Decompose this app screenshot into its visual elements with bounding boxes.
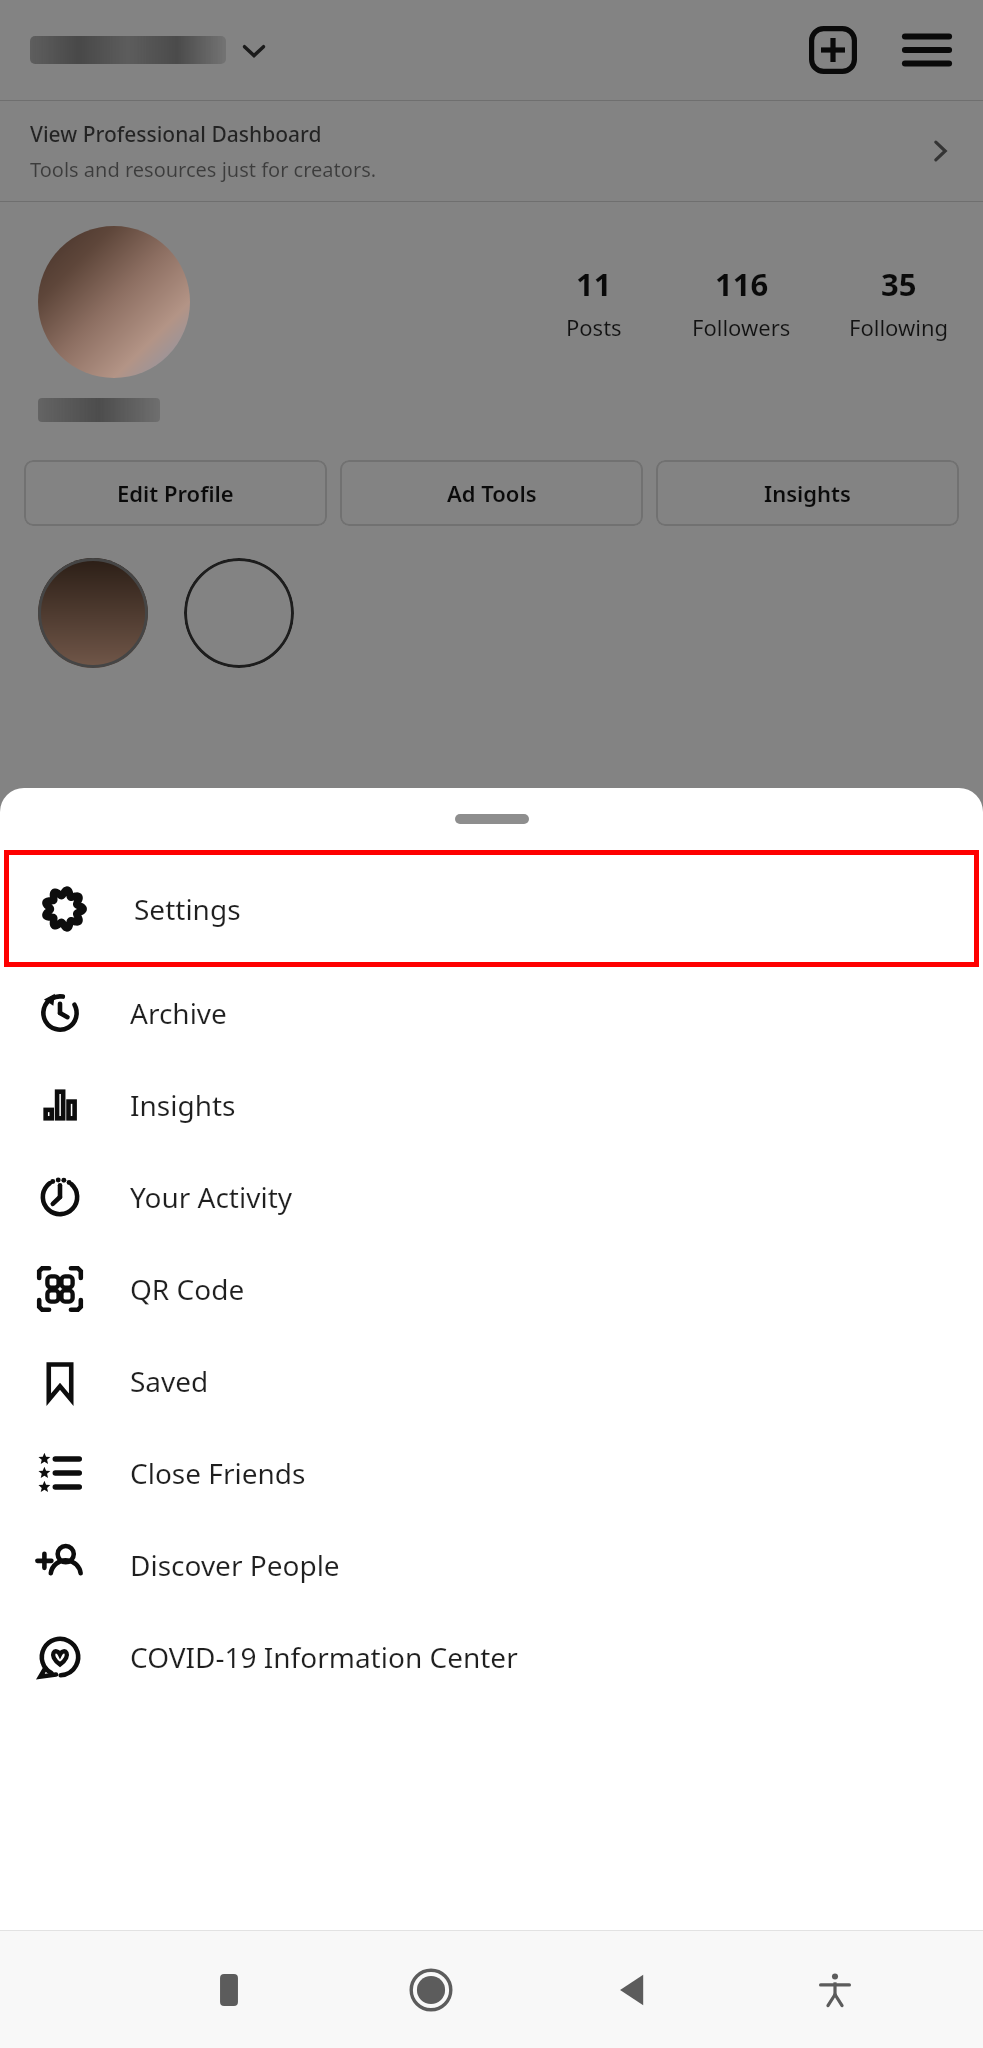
button[interactable] [38, 558, 148, 668]
staticText: View Professional Dashboard [30, 120, 322, 149]
staticText: Discover People [130, 1546, 340, 1584]
staticText: Ad Tools [447, 478, 537, 508]
staticText: Tools and resources just for creators. [30, 156, 377, 183]
button[interactable]: Ad Tools [340, 460, 643, 526]
button[interactable]: Insights [656, 460, 959, 526]
button[interactable]: View Professional Dashboard [0, 101, 983, 201]
button[interactable]: Settings [4, 850, 979, 967]
button[interactable]: Insights [0, 1059, 983, 1151]
staticText: Settings [134, 890, 241, 928]
staticText: Your Activity [130, 1178, 293, 1216]
button[interactable]: Accessibility [793, 1948, 877, 2032]
staticText: QR Code [130, 1270, 245, 1308]
button[interactable]: Discover People [0, 1519, 983, 1611]
button[interactable]: Menu [897, 20, 957, 80]
staticText: 11 [576, 263, 612, 305]
button[interactable]: QR Code [0, 1243, 983, 1335]
staticText: Saved [130, 1362, 209, 1400]
staticText: COVID-19 Information Center [130, 1638, 518, 1676]
staticText: Followers [692, 312, 791, 342]
staticText: Following [849, 312, 949, 342]
button[interactable] [30, 36, 226, 64]
button[interactable]: New post [803, 20, 863, 80]
button[interactable]: Edit Profile [24, 460, 327, 526]
button[interactable] [38, 226, 190, 378]
button[interactable]: Home [389, 1948, 473, 2032]
staticText: Posts [566, 312, 622, 342]
button[interactable]: Saved [0, 1335, 983, 1427]
button[interactable]: Your Activity [0, 1151, 983, 1243]
button[interactable]: Back [591, 1948, 675, 2032]
button[interactable]: Archive [0, 967, 983, 1059]
button[interactable]: Recents [187, 1948, 271, 2032]
staticText: Insights [130, 1086, 236, 1124]
staticText: 116 [715, 263, 769, 305]
staticText: Insights [764, 478, 851, 508]
button[interactable]: Close Friends [0, 1427, 983, 1519]
button[interactable]: COVID-19 Information Center [0, 1611, 983, 1703]
staticText: Close Friends [130, 1454, 306, 1492]
staticText: Archive [130, 994, 227, 1032]
staticText: 35 [881, 263, 917, 305]
staticText: Edit Profile [117, 478, 234, 508]
button[interactable] [184, 558, 294, 668]
